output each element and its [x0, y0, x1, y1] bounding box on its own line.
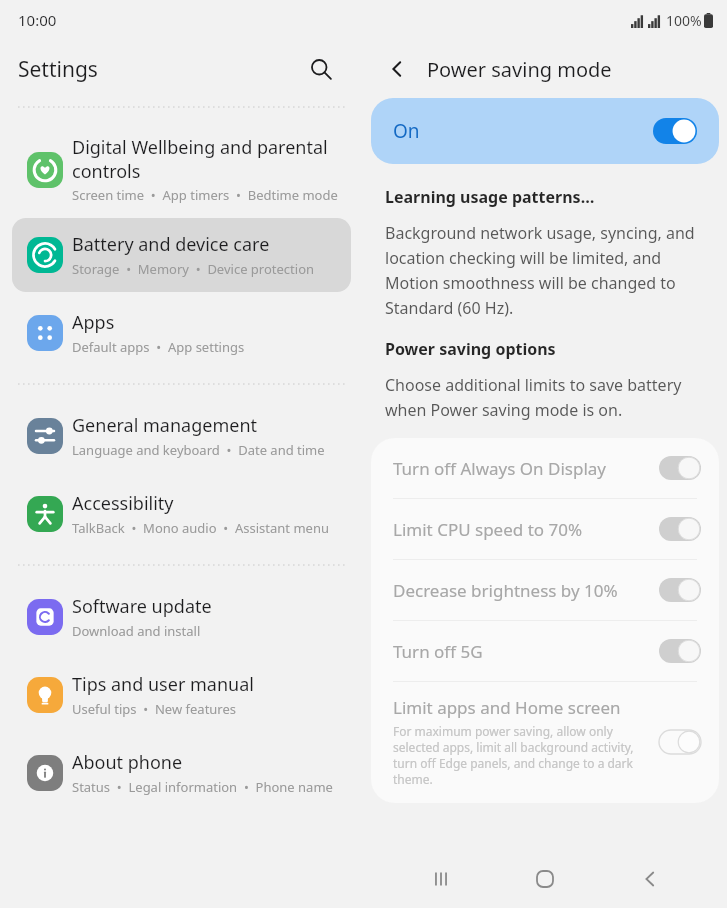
- button[interactable]: Battery and device care: [12, 218, 351, 292]
- button[interactable]: General management: [12, 399, 351, 473]
- staticText: Turn off 5G: [393, 640, 483, 663]
- button[interactable]: Back: [623, 852, 677, 906]
- staticText: Decrease brightness by 10%: [393, 579, 618, 602]
- staticText: Limit CPU speed to 70%: [393, 518, 583, 541]
- staticText: Tips and user manual: [72, 672, 254, 697]
- button[interactable]: Back: [377, 49, 417, 89]
- staticText: Power saving mode: [427, 56, 612, 83]
- staticText: Useful tips • New features: [72, 700, 237, 718]
- staticText: Default apps • App settings: [72, 338, 245, 356]
- button[interactable]: Accessibility: [12, 477, 351, 551]
- staticText: Turn off Always On Display: [393, 457, 607, 480]
- staticText: Software update: [72, 594, 212, 619]
- button[interactable]: About phone: [12, 736, 351, 810]
- button[interactable]: Turn off Always On Display: [371, 438, 719, 498]
- staticText: 10:00: [18, 10, 57, 30]
- staticText: General management: [72, 413, 258, 438]
- staticText: Accessibility: [72, 491, 174, 516]
- button[interactable]: Turn off 5G: [371, 621, 719, 681]
- staticText: Status • Legal information • Phone name: [72, 778, 333, 796]
- staticText: Apps: [72, 310, 115, 335]
- button[interactable]: Digital Wellbeing and parental controls: [12, 125, 351, 214]
- staticText: Background network usage, syncing, and l…: [385, 222, 703, 318]
- button[interactable]: Recents: [414, 852, 468, 906]
- button[interactable]: Search: [301, 49, 341, 89]
- staticText: Choose additional limits to save battery…: [385, 374, 703, 420]
- staticText: On: [393, 118, 653, 144]
- staticText: Settings: [18, 55, 98, 84]
- button[interactable]: Limit apps and Home screen: [371, 682, 719, 803]
- staticText: For maximum power saving, allow only sel…: [393, 723, 649, 787]
- staticText: Learning usage patterns…: [385, 186, 595, 208]
- button[interactable]: Tips and user manual: [12, 658, 351, 732]
- staticText: Screen time • App timers • Bedtime mode: [72, 186, 338, 204]
- button[interactable]: Limit CPU speed to 70%: [371, 499, 719, 559]
- staticText: About phone: [72, 750, 183, 775]
- button[interactable]: Home: [518, 852, 572, 906]
- staticText: Power saving options: [385, 338, 556, 360]
- button[interactable]: On: [371, 98, 719, 164]
- staticText: 100%: [666, 11, 702, 30]
- staticText: Storage • Memory • Device protection: [72, 260, 315, 278]
- staticText: Battery and device care: [72, 232, 270, 257]
- staticText: Language and keyboard • Date and time: [72, 441, 325, 459]
- button[interactable]: Apps: [12, 296, 351, 370]
- button[interactable]: Decrease brightness by 10%: [371, 560, 719, 620]
- staticText: Download and install: [72, 622, 201, 640]
- staticText: Limit apps and Home screen: [393, 696, 621, 719]
- button[interactable]: Software update: [12, 580, 351, 654]
- staticText: TalkBack • Mono audio • Assistant menu: [72, 519, 329, 537]
- staticText: Digital Wellbeing and parental controls: [72, 135, 341, 183]
